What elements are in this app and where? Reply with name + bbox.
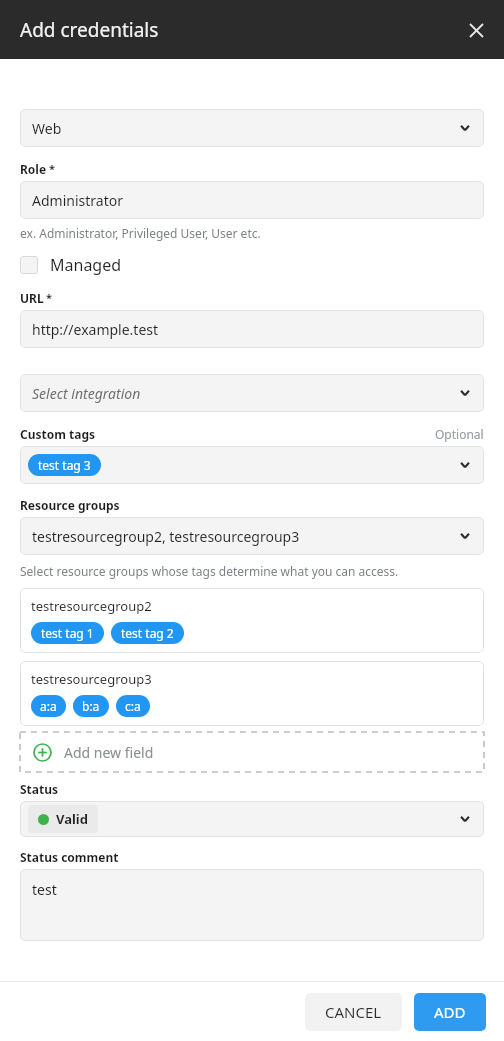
staticText: Administrator: [32, 191, 123, 210]
staticText: ADD: [434, 1002, 466, 1022]
button[interactable]: testresourcegroup2: [20, 588, 484, 653]
staticText: URL: [20, 290, 44, 306]
staticText: Select integration: [32, 384, 141, 403]
staticText: test tag 2: [121, 625, 174, 641]
button[interactable]: b:a: [73, 695, 109, 717]
button[interactable]: CANCEL: [305, 993, 402, 1031]
staticText: Add new field: [64, 743, 154, 762]
button[interactable]: c:a: [116, 695, 150, 717]
button[interactable]: Managed: [20, 252, 122, 278]
staticText: Custom tags: [20, 426, 96, 442]
button[interactable]: Web: [20, 109, 484, 147]
staticText: testresourcegroup2: [31, 597, 152, 615]
button[interactable]: test tag 2: [111, 622, 184, 644]
staticText: Add credentials: [20, 17, 159, 43]
staticText: Optional: [435, 426, 484, 442]
button[interactable]: Close: [458, 12, 494, 48]
staticText: a:a: [40, 698, 57, 714]
staticText: test tag 3: [38, 457, 91, 473]
button[interactable]: test tag 3: [20, 446, 484, 484]
staticText: *: [49, 161, 55, 176]
button[interactable]: ADD: [414, 993, 486, 1031]
staticText: ex. Administrator, Privileged User, User…: [20, 225, 261, 241]
staticText: CANCEL: [325, 1002, 382, 1022]
staticText: c:a: [125, 698, 141, 714]
staticText: Status: [20, 781, 59, 797]
staticText: *: [46, 290, 52, 305]
staticText: testresourcegroup3: [31, 670, 152, 688]
button[interactable]: Add new field: [20, 732, 484, 772]
staticText: Resource groups: [20, 497, 120, 513]
staticText: http://example.test: [32, 320, 159, 339]
staticText: Valid: [56, 810, 88, 828]
button[interactable]: http://example.test: [20, 310, 484, 348]
staticText: Managed: [50, 254, 122, 276]
staticText: testresourcegroup2, testresourcegroup3: [32, 527, 300, 546]
button[interactable]: test: [20, 869, 484, 941]
staticText: test: [32, 880, 57, 899]
staticText: Select resource groups whose tags determ…: [20, 563, 399, 579]
button[interactable]: testresourcegroup2, testresourcegroup3: [20, 517, 484, 555]
button[interactable]: testresourcegroup3: [20, 661, 484, 726]
button[interactable]: a:a: [31, 695, 66, 717]
staticText: Role: [20, 161, 47, 177]
button[interactable]: Select integration: [20, 374, 484, 412]
staticText: b:a: [82, 698, 100, 714]
staticText: test tag 1: [41, 625, 94, 641]
staticText: Status comment: [20, 849, 119, 865]
button[interactable]: test tag 1: [31, 622, 104, 644]
button[interactable]: test tag 3: [28, 454, 101, 476]
button[interactable]: Valid: [20, 801, 484, 837]
staticText: Web: [32, 119, 62, 138]
button[interactable]: Administrator: [20, 181, 484, 219]
